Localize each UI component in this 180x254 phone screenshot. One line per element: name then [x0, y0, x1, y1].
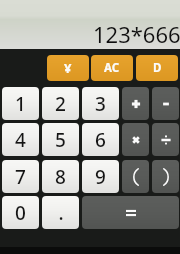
button[interactable]: 1: [2, 87, 39, 120]
staticText: 5: [55, 127, 66, 153]
staticText: 4: [15, 127, 26, 153]
button[interactable]: Close parenthesis: [152, 160, 179, 193]
button[interactable]: 0: [2, 196, 39, 229]
button[interactable]: Equals: [82, 196, 179, 229]
staticText: 8: [55, 164, 66, 190]
button[interactable]: 5: [42, 123, 79, 156]
staticText: D: [153, 60, 162, 76]
staticText: 3: [95, 91, 106, 117]
staticText: 9: [95, 164, 106, 190]
button[interactable]: Currency: [47, 55, 89, 81]
button[interactable]: 3: [82, 87, 119, 120]
staticText: 2: [55, 91, 66, 117]
button[interactable]: Delete: [136, 55, 178, 81]
staticText: AC: [104, 60, 120, 76]
staticText: 0: [15, 200, 26, 226]
button[interactable]: Plus: [122, 87, 149, 120]
button[interactable]: All clear: [91, 55, 133, 81]
button[interactable]: 4: [2, 123, 39, 156]
staticText: .: [58, 200, 64, 226]
button[interactable]: 7: [2, 160, 39, 193]
button[interactable]: Divide: [152, 123, 179, 156]
staticText: ¥: [64, 59, 72, 77]
staticText: 1: [15, 91, 26, 117]
staticText: 7: [15, 164, 26, 190]
button[interactable]: 9: [82, 160, 119, 193]
button[interactable]: 2: [42, 87, 79, 120]
button[interactable]: Minus: [152, 87, 179, 120]
button[interactable]: .: [42, 196, 79, 229]
button[interactable]: Open parenthesis: [122, 160, 149, 193]
staticText: 123*666: [93, 19, 180, 49]
staticText: 6: [95, 127, 106, 153]
button[interactable]: 6: [82, 123, 119, 156]
button[interactable]: 8: [42, 160, 79, 193]
button[interactable]: Multiply: [122, 123, 149, 156]
